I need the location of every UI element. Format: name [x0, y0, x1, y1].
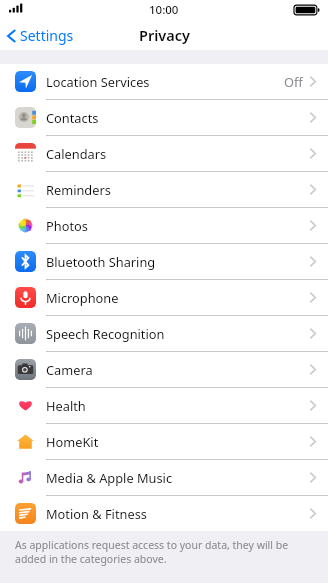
- staticText: Bluetooth Sharing: [46, 253, 156, 270]
- button[interactable]: Contacts: [0, 99, 328, 135]
- staticText: Media & Apple Music: [46, 469, 173, 486]
- staticText: Off: [284, 73, 303, 90]
- staticText: 10:00: [149, 2, 179, 18]
- staticText: Location Services: [46, 73, 150, 90]
- staticText: Camera: [46, 361, 93, 378]
- staticText: HomeKit: [46, 433, 99, 450]
- button[interactable]: Reminders: [0, 171, 328, 207]
- staticText: Calendars: [46, 145, 107, 162]
- button[interactable]: Speech Recognition: [0, 315, 328, 351]
- staticText: Speech Recognition: [46, 325, 165, 342]
- button[interactable]: Calendars: [0, 135, 328, 171]
- staticText: Contacts: [46, 109, 99, 126]
- staticText: Photos: [46, 217, 88, 234]
- staticText: Reminders: [46, 181, 111, 198]
- button[interactable]: Settings: [0, 22, 82, 49]
- button[interactable]: Location Services: [0, 64, 328, 99]
- button[interactable]: Bluetooth Sharing: [0, 243, 328, 279]
- staticText: Microphone: [46, 289, 119, 306]
- button[interactable]: Photos: [0, 207, 328, 243]
- staticText: As applications request access to your d…: [15, 538, 308, 566]
- staticText: Motion & Fitness: [46, 505, 147, 522]
- button[interactable]: HomeKit: [0, 423, 328, 459]
- button[interactable]: Camera: [0, 351, 328, 387]
- staticText: Privacy: [139, 25, 190, 45]
- button[interactable]: Microphone: [0, 279, 328, 315]
- staticText: Settings: [20, 26, 74, 45]
- button[interactable]: Health: [0, 387, 328, 423]
- staticText: Health: [46, 397, 86, 414]
- button[interactable]: Media & Apple Music: [0, 459, 328, 495]
- button[interactable]: Motion & Fitness: [0, 495, 328, 531]
